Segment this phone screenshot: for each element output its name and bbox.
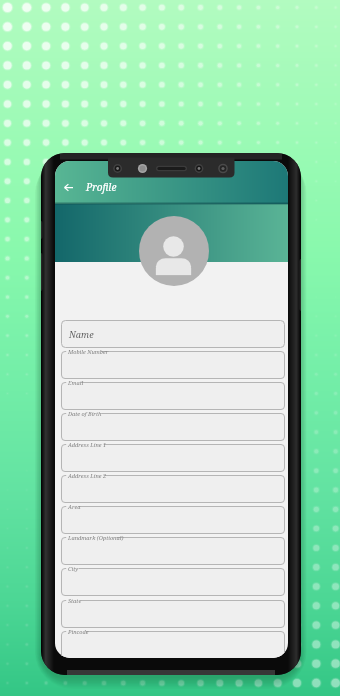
staticText: Mobile Number <box>68 348 109 356</box>
button[interactable]: Landmark (Optional) <box>61 537 285 565</box>
staticText: State <box>68 597 82 605</box>
staticText: Profile <box>86 180 117 194</box>
button[interactable]: Area <box>61 506 285 534</box>
staticText: Address Line 2 <box>68 472 107 480</box>
staticText: Area <box>68 503 81 511</box>
button[interactable]: Address Line 1 <box>61 444 285 472</box>
button[interactable]: Pincode <box>61 631 285 658</box>
button[interactable]: Mobile Number <box>61 351 285 379</box>
staticText: Pincode <box>68 628 89 636</box>
button[interactable]: State <box>61 600 285 628</box>
button[interactable]: Back <box>58 177 78 197</box>
button[interactable]: Name <box>61 320 285 348</box>
staticText: Date of Birth <box>68 410 102 418</box>
button[interactable]: Date of Birth <box>61 413 285 441</box>
staticText: Name <box>69 328 94 340</box>
staticText: Address Line 1 <box>68 441 107 449</box>
button[interactable]: Address Line 2 <box>61 475 285 503</box>
button[interactable]: Email <box>61 382 285 410</box>
button[interactable]: Profile photo <box>139 216 209 286</box>
button[interactable]: City <box>61 568 285 596</box>
staticText: Email <box>68 379 84 387</box>
staticText: Landmark (Optional) <box>68 534 124 542</box>
staticText: City <box>68 565 79 573</box>
